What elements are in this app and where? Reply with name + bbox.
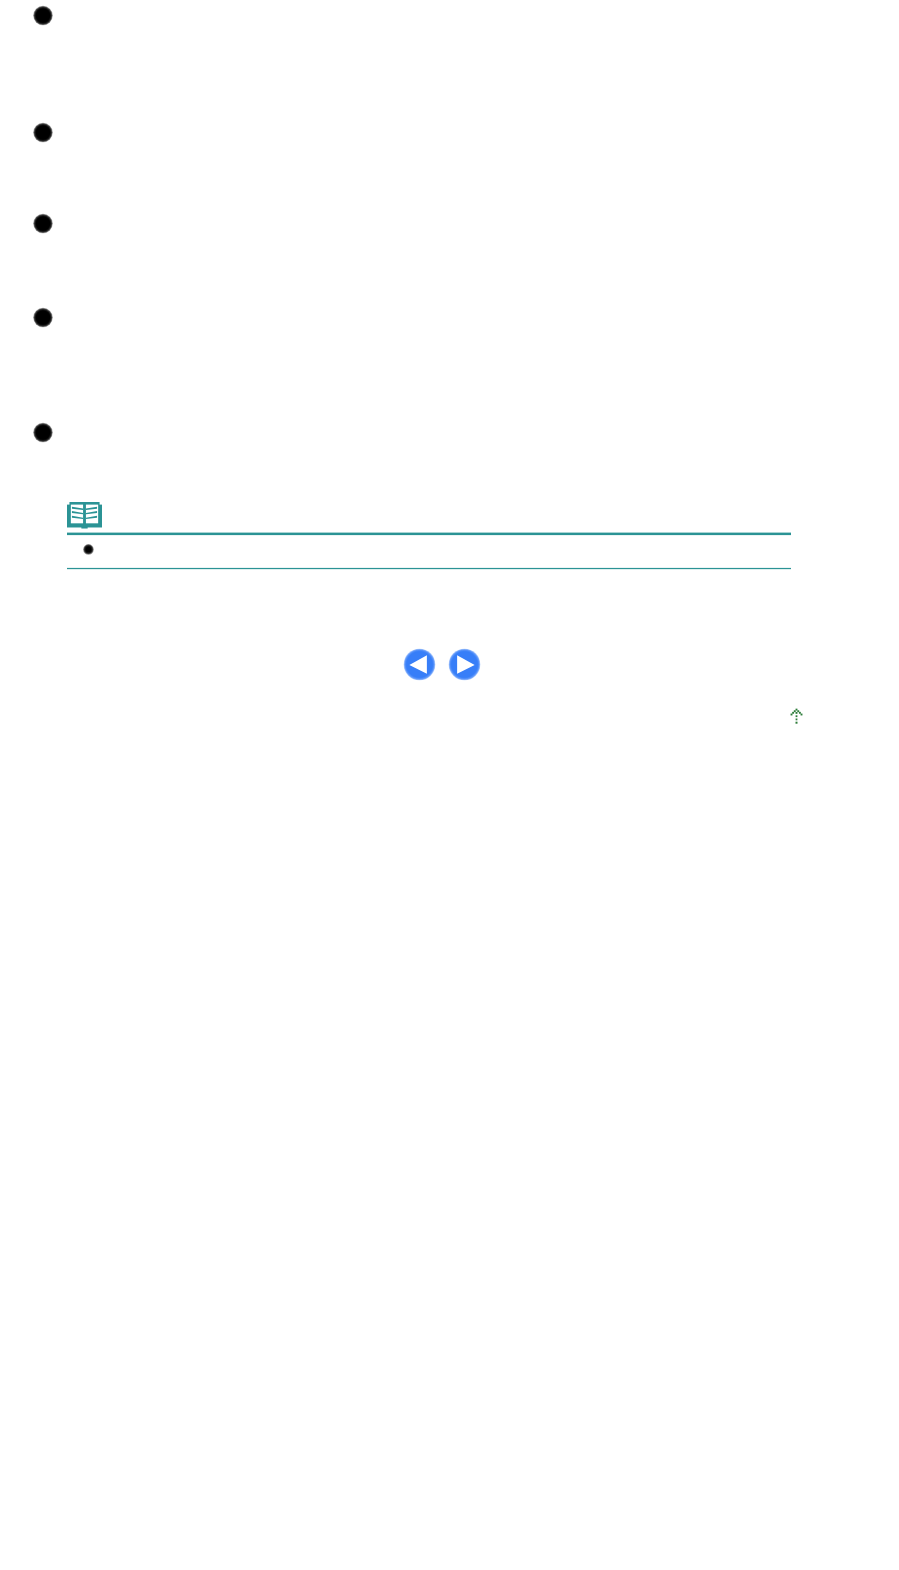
- button[interactable]: Topic link: [0, 422, 899, 444]
- button[interactable]: Topic link: [0, 307, 899, 329]
- button[interactable]: Next page: [450, 650, 479, 679]
- button[interactable]: Note: [67, 502, 102, 528]
- button[interactable]: Previous page: [405, 650, 434, 679]
- button[interactable]: Topic link: [0, 5, 899, 27]
- button[interactable]: Topic link: [0, 122, 899, 144]
- button[interactable]: Topic link: [0, 213, 899, 235]
- button[interactable]: Page top: [789, 708, 804, 725]
